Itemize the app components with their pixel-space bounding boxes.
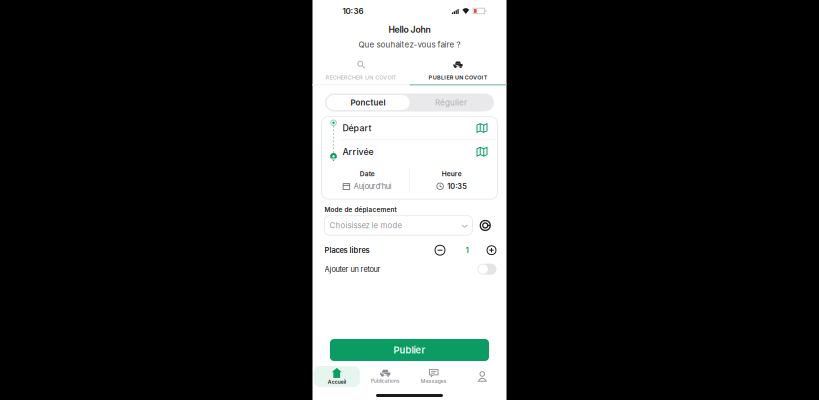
button[interactable]: RECHERCHER UN COVOIT xyxy=(312,58,409,85)
staticText: Places libres xyxy=(324,246,369,255)
staticText: 10:36 xyxy=(342,6,363,16)
staticText: PUBLIER UN COVOIT xyxy=(428,74,487,81)
staticText: RECHERCHER UN COVOIT xyxy=(326,74,396,81)
staticText: Ponctuel xyxy=(350,98,385,107)
button[interactable]: Ajouter une place xyxy=(486,245,496,255)
staticText: Départ xyxy=(342,123,371,133)
staticText: Publications xyxy=(371,378,400,384)
staticText: Aujourd'hui xyxy=(354,182,392,191)
button[interactable]: Carte arrivée xyxy=(476,147,487,157)
staticText: Arrivée xyxy=(342,146,373,157)
staticText: Hello John xyxy=(388,24,430,35)
button[interactable]: Choisissez le mode xyxy=(324,216,472,235)
staticText: Accueil xyxy=(328,379,346,385)
staticText: Mode de déplacement xyxy=(324,206,396,213)
button[interactable]: Régulier xyxy=(409,95,492,110)
staticText: Messages xyxy=(421,378,447,384)
button[interactable]: Carte départ xyxy=(476,123,487,133)
button[interactable]: Retirer une place xyxy=(434,245,445,256)
button[interactable]: Accueil xyxy=(312,366,361,387)
button[interactable]: Publier xyxy=(330,339,489,361)
staticText: 10:35 xyxy=(447,182,467,191)
button[interactable]: PUBLIER UN COVOIT xyxy=(409,58,506,85)
staticText: 1 xyxy=(465,245,468,255)
button[interactable]: Options du mode xyxy=(479,220,491,231)
button[interactable]: Publications xyxy=(361,366,409,387)
staticText: Régulier xyxy=(435,98,467,107)
staticText: Heure xyxy=(442,170,462,178)
staticText: Que souhaitez-vous faire ? xyxy=(358,40,460,49)
button[interactable]: Ponctuel xyxy=(326,95,409,110)
staticText: Ajouter un retour xyxy=(324,265,380,274)
staticText: Choisissez le mode xyxy=(329,221,402,230)
button[interactable]: Date xyxy=(325,170,409,191)
staticText: Date xyxy=(360,170,375,178)
button[interactable]: Ajouter un retour xyxy=(477,264,496,275)
button[interactable]: Profil xyxy=(458,366,506,387)
button[interactable]: Heure xyxy=(410,170,494,191)
staticText: Publier xyxy=(393,344,425,356)
button[interactable]: Messages xyxy=(409,366,458,387)
